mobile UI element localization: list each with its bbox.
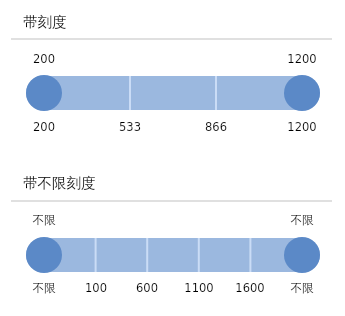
button[interactable]: 带不限刻度 (11, 166, 332, 199)
button[interactable]: 带刻度 (11, 5, 332, 38)
staticText: 100 (66, 281, 126, 294)
staticText: 1200 (272, 120, 332, 133)
staticText: 不限 (14, 213, 74, 227)
staticText: 200 (14, 120, 74, 133)
staticText: 带刻度 (23, 13, 67, 31)
button[interactable]: Range slider (0, 236, 345, 274)
staticText: 1200 (272, 52, 332, 65)
staticText: 600 (117, 281, 177, 294)
staticText: 不限 (272, 281, 332, 295)
button[interactable]: Range slider (0, 74, 345, 112)
staticText: 533 (100, 120, 160, 133)
staticText: 866 (186, 120, 246, 133)
staticText: 200 (14, 52, 74, 65)
staticText: 带不限刻度 (23, 174, 96, 192)
staticText: 1600 (220, 281, 280, 294)
staticText: 不限 (14, 281, 74, 295)
staticText: 不限 (272, 213, 332, 227)
staticText: 1100 (169, 281, 229, 294)
